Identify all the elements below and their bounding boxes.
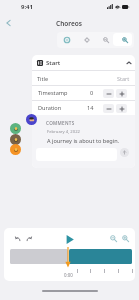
button[interactable]: Increase Duration	[116, 104, 127, 113]
staticText: 0	[90, 89, 94, 97]
button[interactable]	[10, 249, 68, 264]
button[interactable]: Record	[57, 32, 77, 48]
button[interactable]: Decrease Duration	[103, 104, 114, 113]
button[interactable]: Participant	[10, 123, 21, 134]
button[interactable]: Zoom out	[96, 32, 115, 48]
button[interactable]: Zoom in	[115, 32, 134, 48]
staticText: Duration	[38, 104, 62, 112]
staticText: 14	[87, 104, 94, 112]
button[interactable]: Participant	[10, 144, 21, 155]
staticText: COMMENTS	[46, 120, 75, 126]
staticText: 9:41	[21, 3, 33, 11]
staticText: A journey is about to begin.	[47, 137, 120, 145]
staticText: Start	[46, 59, 61, 67]
button[interactable]: Keyframe	[77, 32, 96, 48]
staticText: Start	[117, 75, 130, 82]
button[interactable]: Zoom in	[119, 232, 132, 245]
staticText: February 4, 2022	[47, 129, 80, 135]
button[interactable]: Back	[2, 16, 15, 29]
button[interactable]: Increase Timestamp	[116, 89, 127, 98]
button[interactable]: Start	[37, 55, 132, 70]
button[interactable]: Send	[120, 148, 129, 157]
button[interactable]: Title	[37, 71, 130, 85]
button[interactable]: Play	[62, 231, 78, 247]
button[interactable]: Participant	[10, 134, 21, 145]
staticText: Choreos	[56, 19, 83, 28]
staticText: Timestamp	[38, 89, 68, 97]
button[interactable]: Author	[26, 114, 37, 125]
button[interactable]	[69, 249, 132, 264]
button[interactable]: Undo	[11, 232, 24, 245]
button[interactable]: Redo	[22, 232, 35, 245]
button[interactable]: Decrease Timestamp	[103, 89, 114, 98]
button[interactable]: Zoom out	[107, 232, 120, 245]
staticText: Title	[37, 75, 48, 82]
staticText: 0:00	[64, 272, 73, 278]
